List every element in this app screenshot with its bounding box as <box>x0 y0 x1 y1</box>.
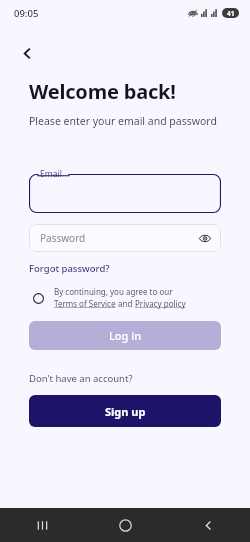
staticText: Password <box>40 231 86 245</box>
button[interactable]: Forgot password? <box>29 262 110 275</box>
button[interactable]: Back <box>167 508 250 542</box>
button[interactable]: Back <box>10 36 44 70</box>
staticText: Welcome back! <box>29 78 176 105</box>
staticText: Don't have an account? <box>29 372 133 385</box>
button[interactable]: Home <box>84 508 167 542</box>
staticText: Please enter your email and password <box>29 114 217 128</box>
button[interactable]: Log in <box>29 321 221 350</box>
button[interactable]: Sign up <box>29 395 221 427</box>
staticText: Log in <box>109 328 142 343</box>
button[interactable] <box>29 174 221 213</box>
button[interactable]: Accept terms <box>29 289 47 307</box>
staticText: and <box>116 298 135 309</box>
button[interactable]: Terms of Service <box>54 298 116 309</box>
staticText: Email <box>40 168 62 180</box>
staticText: 09:05 <box>14 7 39 20</box>
button[interactable]: Privacy policy <box>135 298 186 309</box>
staticText: Sign up <box>105 404 146 419</box>
button[interactable]: Recents <box>0 508 84 542</box>
staticText: By continuing, you agree to our <box>54 286 173 297</box>
staticText: 41 <box>227 9 235 18</box>
button[interactable]: Password <box>29 224 221 252</box>
button[interactable]: Show password <box>197 230 213 246</box>
